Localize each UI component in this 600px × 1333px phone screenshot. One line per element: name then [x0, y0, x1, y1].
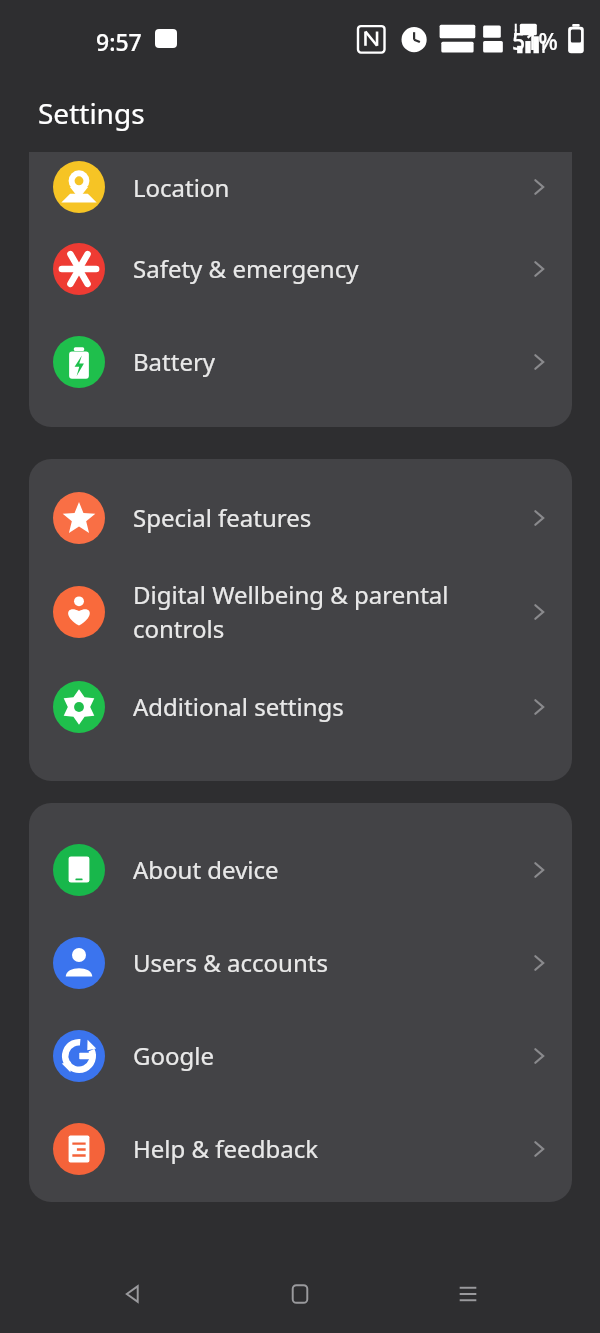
button[interactable]: Additional settings — [29, 663, 572, 750]
button[interactable]: Location — [29, 152, 572, 222]
button[interactable]: Back — [96, 1258, 168, 1330]
staticText: Users & accounts — [133, 946, 328, 979]
staticText: Location — [133, 171, 230, 204]
button[interactable]: About device — [29, 823, 572, 916]
staticText: Digital Wellbeing & parental controls — [133, 578, 449, 646]
button[interactable]: Special features — [29, 474, 572, 561]
button[interactable]: Recent apps — [432, 1258, 504, 1330]
staticText: 9:57 — [96, 26, 142, 57]
staticText: Safety & emergency — [133, 252, 359, 285]
staticText: Battery — [133, 345, 216, 378]
button[interactable]: Safety & emergency — [29, 222, 572, 315]
button[interactable]: Google — [29, 1009, 572, 1102]
button[interactable]: Battery — [29, 315, 572, 408]
staticText: Special features — [133, 501, 312, 534]
staticText: Settings — [38, 94, 145, 132]
staticText: 51% — [512, 25, 558, 56]
staticText: About device — [133, 853, 279, 886]
staticText: Google — [133, 1039, 214, 1072]
button[interactable]: Users & accounts — [29, 916, 572, 1009]
staticText: Additional settings — [133, 690, 344, 723]
button[interactable]: Digital Wellbeing & parental controls — [29, 561, 572, 663]
button[interactable]: Help & feedback — [29, 1102, 572, 1195]
staticText: Help & feedback — [133, 1132, 318, 1165]
button[interactable]: Home — [264, 1258, 336, 1330]
